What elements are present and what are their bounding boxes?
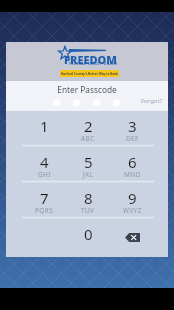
button[interactable]: 9: [110, 183, 154, 219]
button[interactable]: 8: [66, 183, 110, 219]
staticText: 5: [84, 152, 93, 172]
staticText: MNO: [124, 170, 141, 179]
staticText: 9: [128, 188, 137, 208]
button[interactable]: 3: [110, 111, 154, 147]
staticText: 7: [40, 188, 49, 208]
staticText: Forgot?: [141, 97, 163, 105]
staticText: 8: [84, 188, 93, 208]
button[interactable]: 5: [66, 147, 110, 183]
staticText: GHI: [38, 170, 51, 179]
button[interactable]: 1: [22, 111, 66, 147]
button[interactable]: 0: [66, 219, 110, 255]
staticText: TUV: [81, 206, 95, 215]
staticText: 6: [128, 152, 137, 172]
staticText: FREEDOM: [64, 52, 117, 67]
button[interactable]: 7: [22, 183, 66, 219]
staticText: FEDERAL CREDIT UNION: [69, 61, 118, 66]
staticText: 1: [40, 116, 49, 136]
staticText: 0: [84, 224, 93, 244]
staticText: Enter Passcode: [6, 84, 168, 95]
staticText: 3: [128, 116, 137, 136]
button[interactable]: 2: [66, 111, 110, 147]
staticText: WXYZ: [123, 206, 142, 215]
button[interactable]: 6: [110, 147, 154, 183]
staticText: 2: [84, 116, 93, 136]
staticText: JKL: [83, 170, 94, 179]
staticText: PQRS: [35, 206, 54, 215]
staticText: ABC: [81, 134, 95, 143]
button[interactable]: Backspace: [110, 219, 154, 255]
button[interactable]: Forgot?: [135, 96, 169, 106]
staticText: DEF: [126, 134, 139, 143]
button[interactable]: 4: [22, 147, 66, 183]
staticText: 4: [40, 152, 49, 172]
staticText: Harford County's Better Way to Bank: [61, 72, 118, 76]
